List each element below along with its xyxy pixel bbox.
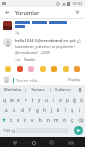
staticText: kazandıran, yükselen ve popülerleri [15, 44, 75, 49]
button[interactable]: Emoji reaction [62, 65, 70, 73]
button[interactable]: Back [10, 138, 19, 147]
button[interactable]: c [22, 115, 29, 125]
button[interactable]: Tamam [26, 85, 50, 94]
staticText: t [32, 97, 34, 103]
button[interactable]: Kullanıcı [51, 85, 75, 94]
button[interactable]: h [41, 105, 48, 115]
button[interactable]: 1sa [15, 57, 21, 62]
staticText: k [57, 107, 60, 113]
staticText: a [5, 107, 8, 113]
staticText: o [59, 97, 62, 103]
staticText: +25M [40, 50, 50, 55]
button[interactable]: o [57, 95, 64, 105]
button[interactable]: q [0, 95, 8, 105]
button[interactable]: d [18, 105, 26, 115]
staticText: ş [71, 107, 74, 113]
button[interactable]: l [62, 105, 69, 115]
button[interactable]: ü [78, 95, 85, 105]
button[interactable]: g [34, 105, 41, 115]
button[interactable]: i [76, 105, 83, 115]
staticText: ?123 [3, 128, 11, 133]
button[interactable]: v [29, 115, 36, 125]
staticText: f [29, 107, 31, 113]
button[interactable]: r [22, 95, 29, 105]
button[interactable]: Emoji reaction [73, 65, 81, 73]
button[interactable]: Hide keyboard [66, 138, 75, 147]
button[interactable]: j [48, 105, 55, 115]
staticText: d [21, 107, 24, 113]
button[interactable]: Voice input [75, 85, 85, 94]
button[interactable]: x [15, 115, 22, 125]
button[interactable]: Yorum ekle... [13, 76, 67, 84]
staticText: b [39, 117, 42, 123]
button[interactable]: u [43, 95, 50, 105]
staticText: ı [53, 97, 55, 103]
staticText: q [3, 97, 6, 103]
button[interactable]: Emoji reaction [4, 65, 12, 73]
button[interactable]: ş [69, 105, 76, 115]
staticText: Kullanıcı [55, 87, 71, 92]
staticText: ö [63, 117, 66, 123]
staticText: s [13, 107, 16, 113]
staticText: e [17, 97, 20, 103]
button[interactable]: w [8, 95, 15, 105]
staticText: g [36, 107, 39, 113]
staticText: z [10, 117, 13, 123]
button[interactable]: Merhaba [0, 85, 25, 94]
staticText: Tamam [31, 87, 45, 92]
button[interactable]: n [44, 115, 52, 125]
staticText: 2g [15, 30, 20, 35]
button[interactable]: Yanıtla [24, 57, 35, 62]
button[interactable]: f [26, 105, 34, 115]
button[interactable]: Paylaş [67, 76, 82, 83]
button[interactable]: Back [3, 8, 12, 17]
button[interactable]: ı [50, 95, 57, 105]
button[interactable]: Recent apps [47, 138, 56, 147]
button[interactable]: Backspace [76, 115, 85, 125]
staticText: ç [71, 117, 74, 123]
staticText: h [43, 107, 46, 113]
button[interactable]: ?123 [2, 125, 11, 136]
staticText: p [66, 97, 69, 103]
staticText: ü [80, 97, 83, 103]
staticText: Yorumlar [15, 9, 40, 16]
button[interactable]: Emoji reaction [50, 65, 58, 73]
button[interactable]: Sort comments [73, 8, 82, 17]
staticText: y [38, 97, 41, 103]
staticText: j [51, 107, 53, 113]
button[interactable]: m [52, 115, 60, 125]
button[interactable]: Emoji keyboard [11, 129, 15, 133]
button[interactable]: Shift [0, 115, 8, 125]
button[interactable]: p [64, 95, 71, 105]
button[interactable]: 2g [0, 19, 85, 36]
button[interactable]: Emoji reaction [39, 65, 47, 73]
staticText: m [54, 117, 59, 123]
button[interactable]: y [36, 95, 43, 105]
button[interactable]: z [8, 115, 15, 125]
staticText: i [79, 107, 81, 113]
staticText: Paylaş [68, 77, 81, 82]
button[interactable]: hello1234 5@trenobrand en çok [0, 36, 85, 64]
staticText: n [47, 117, 50, 123]
button[interactable]: Send [74, 126, 83, 135]
button[interactable]: k [55, 105, 62, 115]
button[interactable]: t [29, 95, 36, 105]
staticText: x [17, 117, 20, 123]
button[interactable]: e [15, 95, 22, 105]
button[interactable]: ç [68, 115, 76, 125]
staticText: ğ [73, 97, 76, 103]
button[interactable]: Like [76, 38, 82, 44]
button[interactable]: ğ [71, 95, 78, 105]
staticText: Yorum ekle... [16, 78, 41, 83]
button[interactable]: b [36, 115, 44, 125]
button[interactable]: Emoji reaction [27, 65, 35, 73]
button[interactable]: Emoji reaction [16, 65, 24, 73]
button[interactable]: ö [60, 115, 68, 125]
button[interactable]: Home [29, 138, 38, 147]
button[interactable]: s [10, 105, 18, 115]
staticText: 10:03 [72, 1, 83, 6]
button[interactable]: a [2, 105, 10, 115]
